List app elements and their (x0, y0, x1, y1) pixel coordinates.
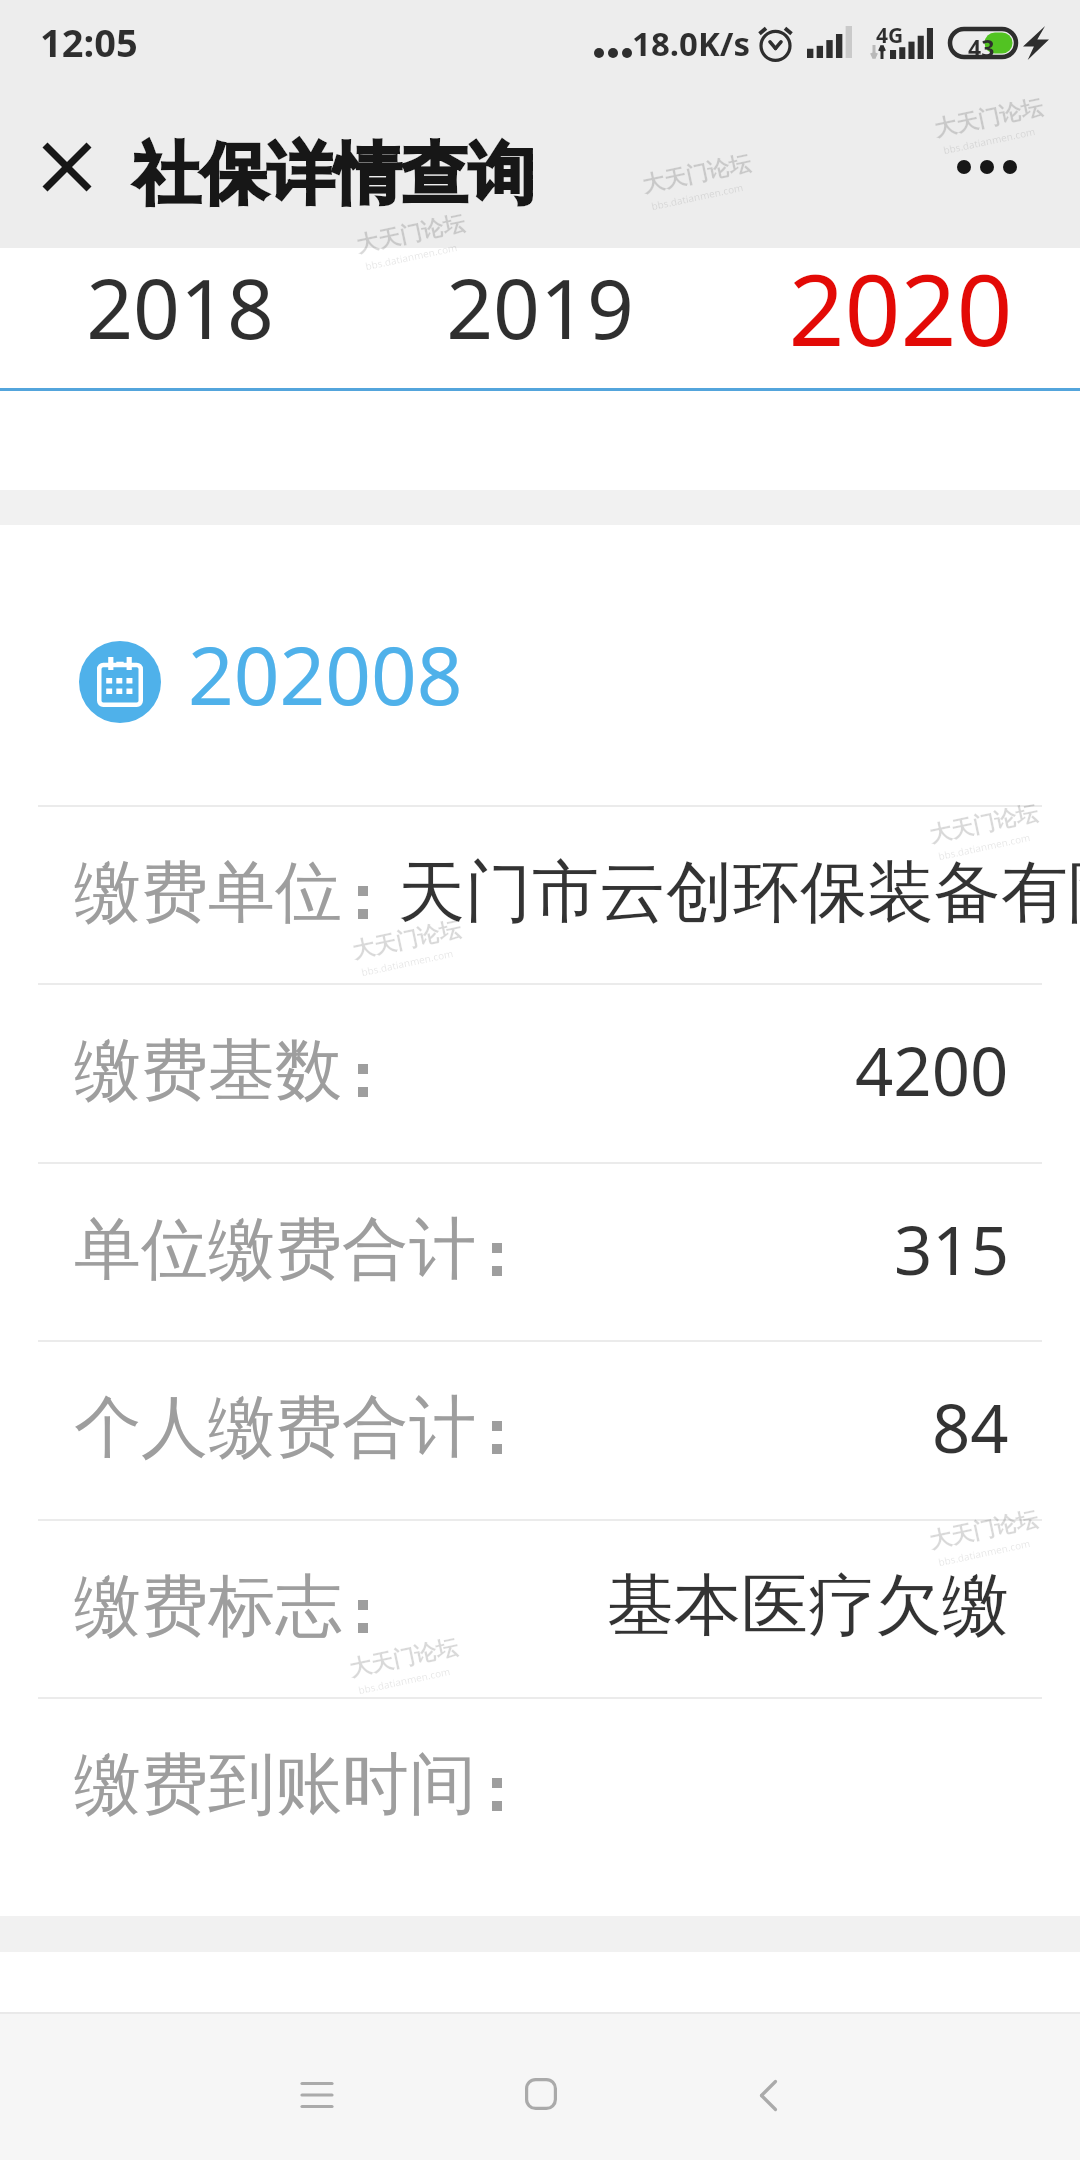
staticText: bbs.datianmen.com (937, 830, 1032, 863)
staticText: 基本医疗欠缴 (607, 1563, 1009, 1647)
button[interactable]: More options (942, 122, 1032, 212)
button[interactable]: 个人缴费合计 (0, 1340, 1080, 1518)
staticText: 18.0K/s (632, 21, 751, 66)
button[interactable]: Back (718, 2045, 818, 2145)
staticText: 单位缴费合计 (74, 1207, 476, 1291)
staticText: bbs.datianmen.com (364, 240, 459, 273)
button[interactable]: 2020 (720, 248, 1080, 388)
staticText: 202008 (188, 619, 463, 728)
staticText: 大天门论坛 (640, 149, 753, 199)
button[interactable]: 缴费单位 (0, 805, 1080, 983)
staticText: 2020 (788, 241, 1013, 374)
staticText: bbs.datianmen.com (942, 124, 1037, 157)
button[interactable]: 缴费到账时间 (0, 1697, 1080, 1875)
staticText: 4G (876, 21, 904, 50)
button[interactable]: Close (22, 122, 112, 212)
staticText: 天门市云创环保装备有限公司 (398, 850, 1080, 934)
staticText: 大天门论坛 (354, 209, 467, 259)
staticText: 84 (932, 1381, 1009, 1472)
button[interactable]: Home (491, 2044, 591, 2144)
staticText: 2019 (446, 251, 634, 363)
staticText: 大天门论坛 (932, 93, 1045, 143)
button[interactable]: 缴费标志 (0, 1519, 1080, 1697)
staticText: 个人缴费合计 (74, 1385, 476, 1469)
staticText: bbs.datianmen.com (650, 180, 745, 213)
button[interactable]: Recent apps (267, 2045, 367, 2145)
staticText: 2018 (86, 251, 274, 363)
staticText: 大天门论坛 (347, 1633, 460, 1683)
staticText: 315 (894, 1203, 1009, 1294)
staticText: 缴费单位 (74, 850, 342, 934)
staticText: 缴费基数 (74, 1028, 342, 1112)
staticText: 12:05 (40, 16, 138, 68)
staticText: 社保详情查询 (133, 132, 535, 216)
staticText: bbs.datianmen.com (937, 1536, 1032, 1569)
staticText: bbs.datianmen.com (360, 946, 455, 979)
staticText: 缴费标志 (74, 1564, 342, 1648)
staticText: 43 (968, 32, 995, 63)
staticText: 缴费到账时间 (74, 1742, 476, 1826)
staticText: 大天门论坛 (927, 1505, 1040, 1555)
button[interactable]: 2018 (0, 248, 360, 388)
staticText: bbs.datianmen.com (357, 1664, 452, 1697)
staticText: 大天门论坛 (350, 915, 463, 965)
staticText: 4200 (855, 1024, 1009, 1115)
button[interactable]: 缴费基数 (0, 983, 1080, 1161)
button[interactable]: 单位缴费合计 (0, 1162, 1080, 1340)
button[interactable]: 2019 (360, 248, 720, 388)
staticText: 大天门论坛 (927, 799, 1040, 849)
